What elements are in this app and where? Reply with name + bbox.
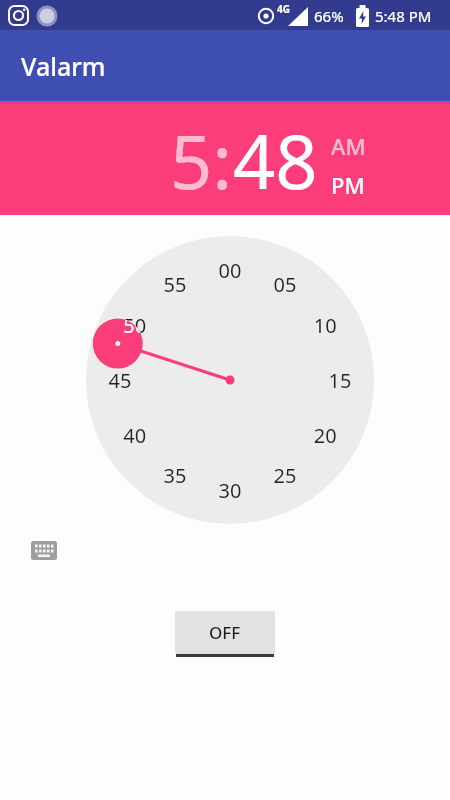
- button[interactable]: PM: [331, 170, 365, 200]
- staticText: 66%: [314, 6, 344, 26]
- staticText: Valarm: [21, 49, 106, 83]
- button[interactable]: OFF: [175, 611, 275, 654]
- staticText: OFF: [209, 621, 241, 644]
- staticText: 4G: [277, 2, 290, 16]
- staticText: 5:48 PM: [375, 6, 432, 26]
- button[interactable]: Valarm: [0, 30, 450, 101]
- button[interactable]: 48: [233, 110, 318, 211]
- button[interactable]: 5:: [170, 110, 233, 211]
- button[interactable]: AM: [331, 131, 366, 161]
- button[interactable]: [30, 541, 58, 565]
- button[interactable]: [86, 236, 374, 524]
